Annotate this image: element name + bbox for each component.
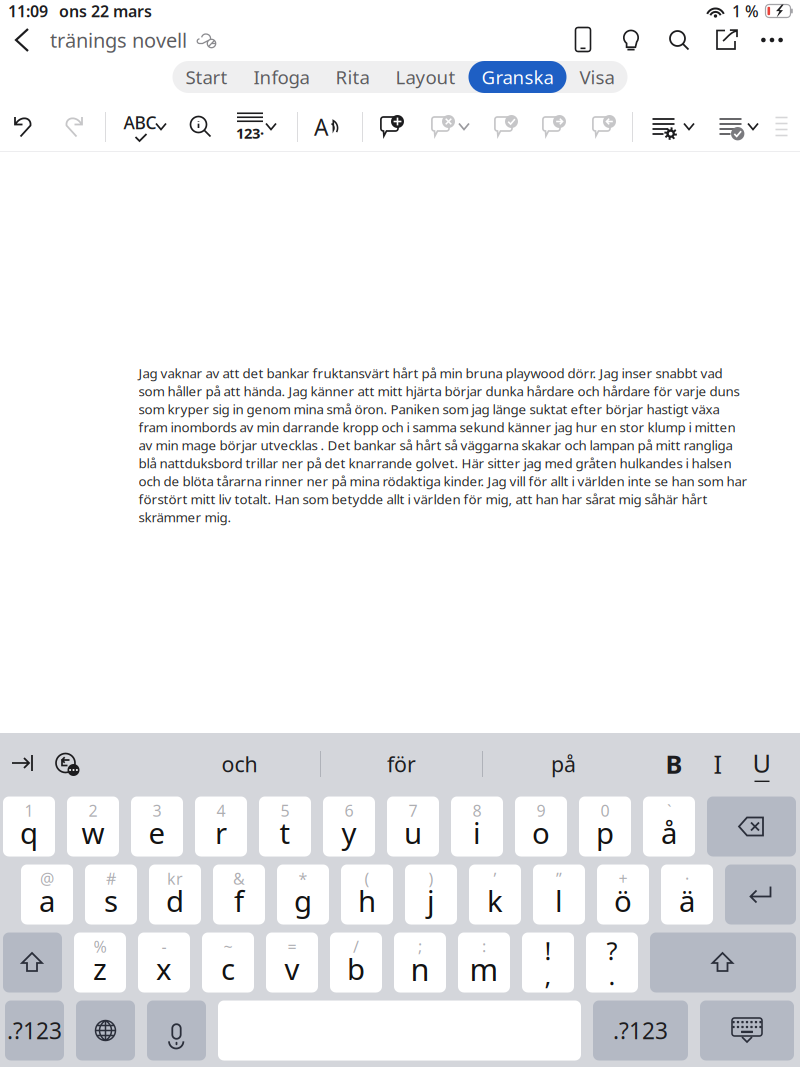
button[interactable]: 7 xyxy=(387,796,439,856)
button[interactable]: - xyxy=(138,932,190,992)
button[interactable]: More commands xyxy=(760,105,800,149)
button[interactable]: Backspace xyxy=(707,796,796,856)
button[interactable]: Undo xyxy=(45,742,89,786)
button[interactable]: ` xyxy=(643,796,695,856)
button[interactable]: Delete comment xyxy=(420,105,464,149)
button[interactable]: Italic xyxy=(696,742,740,786)
button[interactable]: Granska xyxy=(468,61,566,93)
staticText: a xyxy=(39,881,55,920)
button[interactable]: Underline xyxy=(740,742,784,786)
button[interactable]: ? xyxy=(586,932,638,992)
button[interactable]: % xyxy=(74,932,126,992)
button[interactable]: # xyxy=(85,864,137,924)
button[interactable]: Read aloud xyxy=(305,105,349,149)
button[interactable]: Rita xyxy=(322,61,382,93)
button[interactable]: 8 xyxy=(451,796,503,856)
button[interactable]: Markup menu xyxy=(667,105,711,149)
button[interactable]: Phone layout xyxy=(561,22,605,58)
staticText: % xyxy=(93,936,106,957)
button[interactable]: Infoga xyxy=(240,61,322,93)
staticText: . xyxy=(608,959,615,992)
staticText: ons 22 mars xyxy=(59,0,152,22)
button[interactable]: ~ xyxy=(202,932,254,992)
button[interactable]: Numbers xyxy=(593,1000,688,1060)
staticText: + xyxy=(618,868,627,889)
button[interactable]: Spelling xyxy=(118,105,162,149)
staticText: A xyxy=(314,112,328,142)
button[interactable]: och xyxy=(159,742,320,786)
button[interactable]: 2 xyxy=(67,796,119,856)
staticText: ` xyxy=(667,800,671,821)
button[interactable]: New comment xyxy=(369,105,413,149)
button[interactable]: Spelling options xyxy=(139,105,183,149)
button[interactable]: Search xyxy=(657,22,701,58)
button[interactable]: Visa xyxy=(566,61,627,93)
button[interactable]: * xyxy=(277,864,329,924)
staticText: 4 xyxy=(216,800,225,821)
button[interactable]: Dictate xyxy=(147,1000,206,1060)
button[interactable]: Back xyxy=(2,22,42,58)
staticText: ( xyxy=(364,868,369,889)
button[interactable]: Tell me xyxy=(609,22,653,58)
button[interactable]: ” xyxy=(533,864,585,924)
button[interactable]: kr xyxy=(149,864,201,924)
button[interactable]: 3 xyxy=(131,796,183,856)
button[interactable]: på xyxy=(483,742,644,786)
button[interactable]: Word count xyxy=(228,105,272,149)
staticText: Visa xyxy=(579,65,614,89)
button[interactable]: Word count options xyxy=(249,105,293,149)
button[interactable]: + xyxy=(597,864,649,924)
button[interactable]: för xyxy=(321,742,482,786)
button[interactable]: More xyxy=(750,22,794,58)
button[interactable]: ’ xyxy=(469,864,521,924)
staticText: 9 xyxy=(536,800,545,821)
button[interactable]: : xyxy=(458,932,510,992)
button[interactable]: Hide keyboard xyxy=(700,1000,794,1060)
button[interactable]: ! xyxy=(522,932,574,992)
button[interactable]: Return xyxy=(725,864,796,924)
button[interactable]: ) xyxy=(405,864,457,924)
button[interactable]: Display for review menu xyxy=(731,105,775,149)
button[interactable]: Smart lookup xyxy=(179,105,223,149)
button[interactable]: Start xyxy=(172,61,240,93)
button[interactable]: 1 xyxy=(3,796,55,856)
button[interactable]: · xyxy=(661,864,713,924)
staticText: 11:09 xyxy=(8,0,48,22)
button[interactable]: Bold xyxy=(652,742,696,786)
button[interactable]: Next keyboard xyxy=(76,1000,135,1060)
button[interactable]: 6 xyxy=(323,796,375,856)
button[interactable]: Display for review xyxy=(709,105,753,149)
button[interactable]: Resolve comment xyxy=(483,105,527,149)
staticText: h xyxy=(358,881,376,920)
button[interactable]: Shift xyxy=(3,932,62,992)
button[interactable]: 5 xyxy=(259,796,311,856)
button[interactable]: 4 xyxy=(195,796,247,856)
button[interactable]: / xyxy=(330,932,382,992)
staticText: ) xyxy=(428,868,433,889)
button[interactable]: ( xyxy=(341,864,393,924)
staticText: # xyxy=(106,868,116,889)
button[interactable]: Undo xyxy=(2,105,46,149)
button[interactable]: Space xyxy=(218,1000,581,1060)
staticText: m xyxy=(469,949,498,989)
button[interactable]: Delete comment options xyxy=(442,105,486,149)
button[interactable]: 0 xyxy=(579,796,631,856)
button[interactable]: Tab xyxy=(1,742,45,786)
button[interactable]: Redo xyxy=(51,105,95,149)
button[interactable]: 9 xyxy=(515,796,567,856)
button[interactable]: Dictate xyxy=(776,833,800,892)
button[interactable]: Markup options xyxy=(642,105,686,149)
button[interactable]: = xyxy=(266,932,318,992)
button[interactable]: Numbers xyxy=(5,1000,64,1060)
button[interactable]: Next comment xyxy=(531,105,575,149)
button[interactable]: Layout xyxy=(382,61,468,93)
button[interactable]: & xyxy=(213,864,265,924)
button[interactable]: Share xyxy=(705,22,749,58)
button[interactable]: Shift xyxy=(650,932,796,992)
button[interactable]: tränings novell xyxy=(50,22,217,58)
staticText: l xyxy=(555,881,563,920)
staticText: b xyxy=(347,949,365,988)
button[interactable]: Previous comment xyxy=(581,105,625,149)
button[interactable]: @ xyxy=(21,864,73,924)
button[interactable]: ; xyxy=(394,932,446,992)
